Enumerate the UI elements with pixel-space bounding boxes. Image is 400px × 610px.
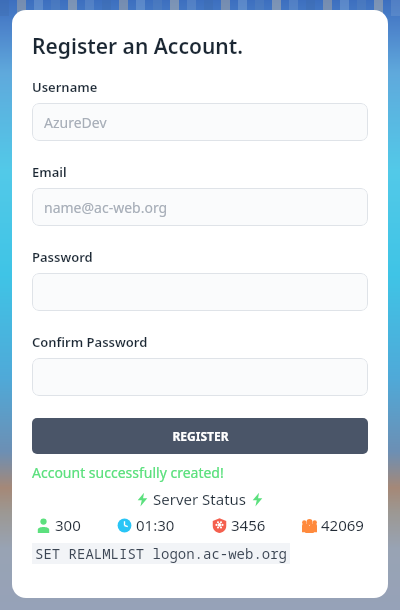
staticText: Server Status bbox=[153, 489, 247, 509]
staticText: SET REALMLIST logon.ac-web.org bbox=[35, 544, 287, 563]
staticText: REGISTER bbox=[172, 428, 229, 444]
staticText: Email bbox=[32, 163, 67, 181]
staticText: Username bbox=[32, 78, 98, 96]
staticText: Register an Account. bbox=[32, 32, 244, 61]
button[interactable] bbox=[32, 358, 368, 396]
button[interactable] bbox=[32, 273, 368, 311]
staticText: 3456 bbox=[231, 515, 266, 535]
button[interactable]: name@ac-web.org bbox=[32, 188, 368, 226]
staticText: AzureDev bbox=[44, 113, 107, 132]
staticText: Account successfully created! bbox=[32, 463, 224, 482]
button[interactable]: REGISTER bbox=[32, 418, 368, 454]
staticText: name@ac-web.org bbox=[44, 198, 168, 217]
staticText: Password bbox=[32, 248, 93, 266]
staticText: 300 bbox=[55, 515, 81, 535]
staticText: 01:30 bbox=[136, 515, 175, 535]
staticText: 42069 bbox=[321, 515, 364, 535]
staticText: Confirm Password bbox=[32, 333, 148, 351]
button[interactable]: AzureDev bbox=[32, 103, 368, 141]
